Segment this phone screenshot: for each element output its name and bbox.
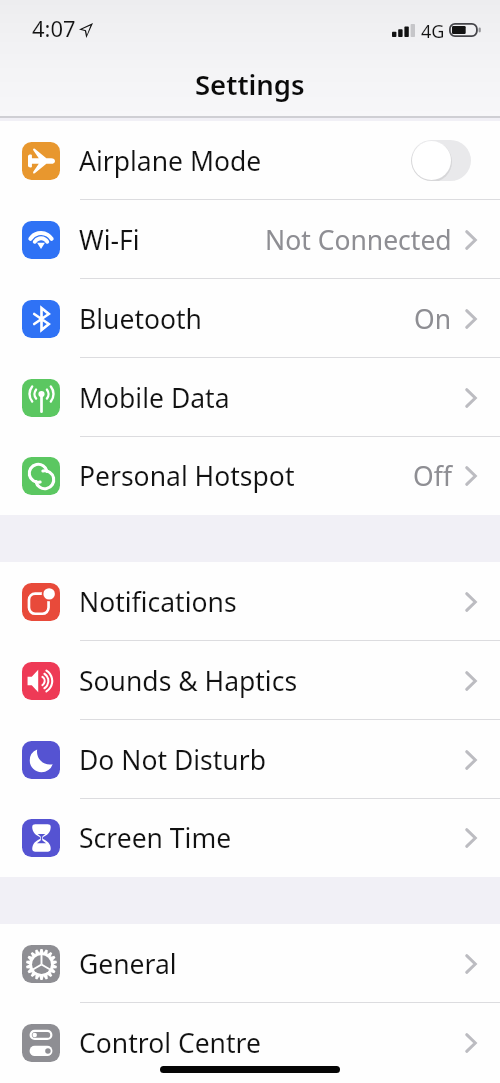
staticText: 4:07: [32, 13, 76, 43]
button[interactable]: Airplane Mode: [0, 121, 500, 200]
staticText: Airplane Mode: [79, 143, 262, 179]
button[interactable]: Do Not Disturb: [0, 720, 500, 799]
staticText: Screen Time: [79, 820, 232, 856]
staticText: Bluetooth: [79, 301, 202, 337]
button[interactable]: Sounds & Haptics: [0, 641, 500, 720]
staticText: Personal Hotspot: [79, 458, 295, 494]
staticText: Not Connected: [265, 222, 452, 258]
staticText: General: [79, 946, 177, 982]
button[interactable]: Airplane Mode toggle: [411, 140, 471, 181]
button[interactable]: Notifications: [0, 562, 500, 641]
button[interactable]: Mobile Data: [0, 358, 500, 437]
button[interactable]: Screen Time: [0, 799, 500, 877]
staticText: 4G: [421, 19, 445, 44]
staticText: Notifications: [79, 584, 237, 620]
button[interactable]: Wi-Fi: [0, 200, 500, 279]
staticText: Settings: [195, 66, 305, 103]
button[interactable]: Personal Hotspot: [0, 437, 500, 515]
staticText: On: [414, 301, 452, 337]
button[interactable]: General: [0, 924, 500, 1003]
staticText: Wi-Fi: [79, 222, 140, 258]
other: Battery: [449, 23, 481, 37]
staticText: Control Centre: [79, 1025, 261, 1061]
staticText: Mobile Data: [79, 380, 230, 416]
staticText: Off: [413, 458, 452, 494]
button[interactable]: Control Centre: [0, 1003, 500, 1082]
staticText: Do Not Disturb: [79, 742, 266, 778]
button[interactable]: Bluetooth: [0, 279, 500, 358]
other: Location: [79, 23, 93, 38]
staticText: Sounds & Haptics: [79, 663, 298, 699]
